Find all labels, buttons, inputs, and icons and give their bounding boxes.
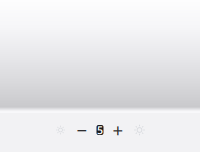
button[interactable]: Increase <box>107 117 128 143</box>
button[interactable]: Increase brightness <box>128 117 150 143</box>
staticText: + <box>112 118 123 142</box>
button[interactable]: Decrease <box>71 117 92 143</box>
button[interactable]: Page number <box>92 117 107 143</box>
staticText: 5 <box>97 123 103 137</box>
staticText: − <box>76 118 87 142</box>
button[interactable]: Decrease brightness <box>49 117 71 143</box>
